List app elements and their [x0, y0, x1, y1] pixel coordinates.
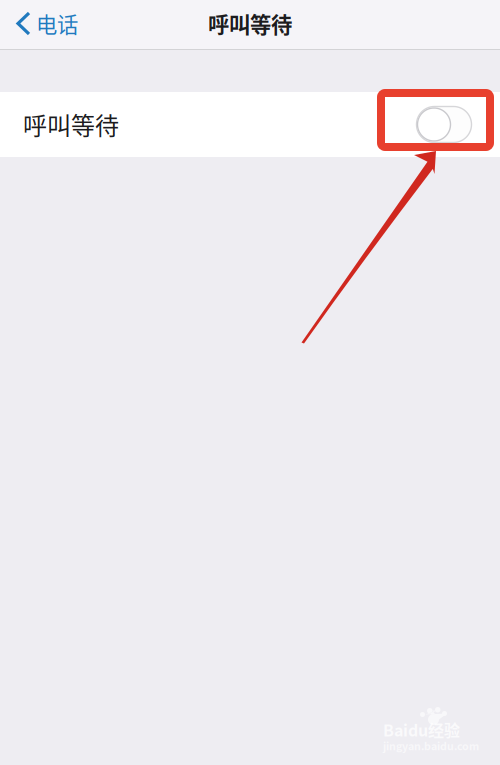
button[interactable]: 电话 — [0, 0, 88, 50]
staticText: 呼叫等待 — [208, 8, 292, 39]
button[interactable]: 呼叫等待 开关，关闭 — [416, 106, 472, 143]
staticText: 电话 — [36, 8, 78, 39]
staticText: 呼叫等待 — [23, 107, 119, 141]
staticText: Baidu经验 — [383, 718, 460, 741]
staticText: jingyan.baidu.com — [383, 738, 479, 753]
